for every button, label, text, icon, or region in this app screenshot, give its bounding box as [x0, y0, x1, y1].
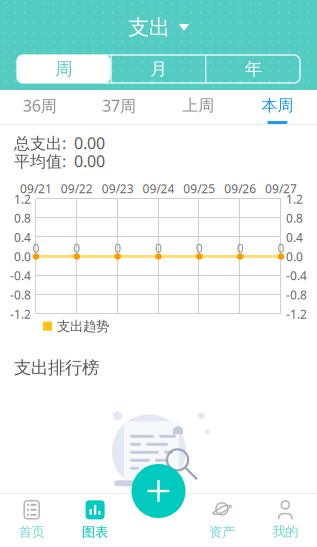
staticText: 36周: [23, 95, 57, 116]
staticText: 0: [196, 240, 203, 256]
button[interactable]: 本周: [238, 90, 317, 124]
staticText: 09/27: [265, 180, 297, 196]
staticText: -1.2: [10, 306, 31, 322]
staticText: 总支出: 0.00: [14, 132, 105, 154]
staticText: 09/26: [224, 180, 256, 196]
staticText: 周: [55, 58, 72, 80]
staticText: 上周: [182, 96, 214, 115]
staticText: 0.4: [14, 229, 31, 245]
staticText: 09/22: [61, 180, 93, 196]
staticText: 0: [114, 240, 121, 256]
staticText: 09/21: [20, 180, 52, 196]
button[interactable]: 图表: [63, 493, 127, 547]
staticText: 资产: [209, 524, 235, 540]
button[interactable]: 月: [112, 55, 205, 83]
staticText: 我的: [272, 523, 298, 540]
staticText: 1.2: [286, 191, 303, 207]
staticText: 本周: [261, 96, 293, 115]
staticText: 平均值: 0.00: [14, 150, 105, 172]
staticText: 37周: [102, 95, 136, 116]
staticText: 0.0: [286, 248, 303, 264]
button[interactable]: 我的: [254, 493, 317, 547]
staticText: 0.4: [286, 229, 303, 245]
button[interactable]: 首页: [0, 493, 63, 547]
button[interactable]: 上周: [158, 90, 238, 124]
staticText: 0: [73, 240, 80, 256]
staticText: 图表: [82, 524, 108, 540]
button[interactable]: 资产: [190, 493, 254, 547]
staticText: 0: [277, 240, 284, 256]
staticText: 支出: [128, 14, 170, 41]
staticText: -0.4: [10, 268, 31, 284]
staticText: -0.4: [286, 268, 307, 284]
button[interactable]: 37周: [79, 90, 158, 124]
staticText: 1.2: [14, 191, 31, 207]
staticText: 09/25: [183, 180, 215, 196]
staticText: 月: [150, 58, 167, 80]
staticText: 首页: [19, 524, 45, 540]
button[interactable]: 支出: [0, 0, 317, 55]
staticText: 支出趋势: [57, 318, 109, 334]
staticText: -0.8: [286, 287, 307, 303]
button[interactable]: 36周: [0, 90, 79, 124]
staticText: -1.2: [286, 306, 307, 322]
staticText: 0: [237, 240, 244, 256]
button[interactable]: 年: [206, 55, 300, 83]
staticText: 0: [32, 240, 39, 256]
staticText: 0: [155, 240, 162, 256]
staticText: 年: [245, 58, 262, 80]
button[interactable]: Add transaction: [129, 462, 187, 520]
staticText: 0.8: [286, 210, 303, 226]
staticText: -0.8: [10, 287, 31, 303]
staticText: 09/23: [102, 180, 134, 196]
staticText: 0.0: [14, 248, 31, 264]
staticText: 支出排行榜: [14, 357, 99, 378]
button[interactable]: 周: [17, 55, 111, 83]
staticText: 0.8: [14, 210, 31, 226]
staticText: 09/24: [142, 180, 174, 196]
